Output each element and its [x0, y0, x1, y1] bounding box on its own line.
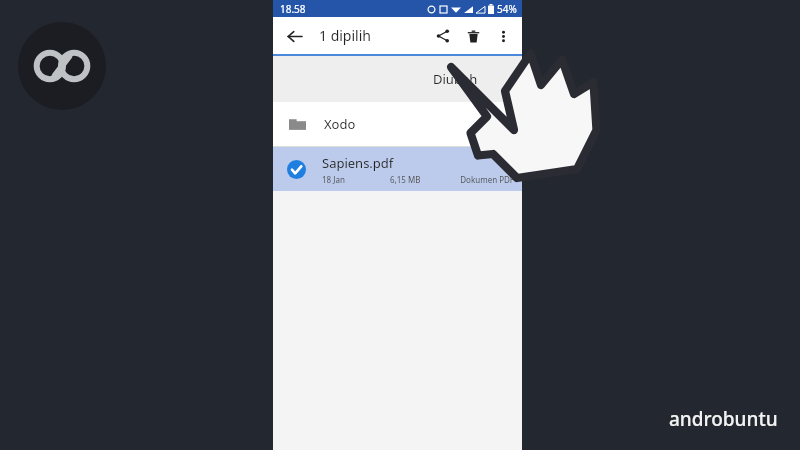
button[interactable]: Xodo	[273, 102, 522, 146]
staticText: 18.58	[280, 2, 306, 16]
staticText: Dokumen PDF	[460, 174, 514, 185]
button[interactable]: Back	[279, 21, 309, 51]
button[interactable]: Diubah	[273, 56, 522, 102]
staticText: Diubah	[433, 70, 478, 88]
staticText: androbuntu	[669, 406, 778, 432]
button[interactable]: Sapiens.pdf	[273, 147, 522, 191]
staticText: Sapiens.pdf	[322, 154, 394, 172]
staticText: 54%	[497, 2, 517, 16]
button[interactable]: More options	[488, 21, 518, 51]
staticText: 6,15 MB	[390, 174, 460, 185]
staticText: 1 dipilih	[319, 26, 371, 45]
button[interactable]: Share	[428, 21, 458, 51]
button[interactable]: Delete	[458, 21, 488, 51]
staticText: Xodo	[324, 115, 356, 133]
staticText: 18 Jan	[322, 174, 390, 185]
